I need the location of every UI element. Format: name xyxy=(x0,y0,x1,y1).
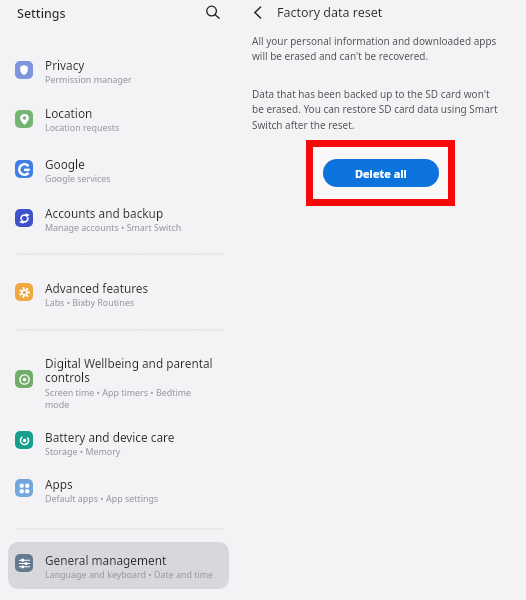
staticText: Location xyxy=(45,105,93,121)
button[interactable] xyxy=(8,465,229,512)
button[interactable] xyxy=(8,195,229,242)
button[interactable]: Back xyxy=(245,0,270,25)
staticText: Permission manager xyxy=(45,73,132,85)
button[interactable] xyxy=(8,540,229,587)
staticText: Apps xyxy=(45,476,73,492)
staticText: Settings xyxy=(17,5,66,22)
button[interactable] xyxy=(8,356,229,403)
staticText: Advanced features xyxy=(45,280,149,296)
staticText: Language and keyboard • Date and time xyxy=(45,568,214,580)
staticText: General management xyxy=(45,552,167,568)
staticText: Screen time • App timers • Bedtime mode xyxy=(45,386,215,410)
staticText: Google xyxy=(45,156,85,172)
staticText: Location requests xyxy=(45,121,120,133)
staticText: Storage • Memory xyxy=(45,445,121,457)
button[interactable]: Settings xyxy=(10,0,72,26)
button[interactable] xyxy=(8,417,229,464)
staticText: Digital Wellbeing and parental controls xyxy=(45,355,215,386)
button[interactable] xyxy=(8,146,229,193)
staticText: Google services xyxy=(45,172,111,184)
staticText: Data that has been backed up to the SD c… xyxy=(252,87,502,132)
staticText: Accounts and backup xyxy=(45,205,164,221)
button[interactable] xyxy=(8,46,229,93)
staticText: Factory data reset xyxy=(277,4,383,21)
staticText: All your personal information and downlo… xyxy=(252,34,500,63)
button[interactable]: Delete all xyxy=(323,159,439,187)
staticText: Manage accounts • Smart Switch xyxy=(45,221,182,233)
staticText: Battery and device care xyxy=(45,429,175,445)
button[interactable] xyxy=(8,269,229,316)
staticText: Default apps • App settings xyxy=(45,492,159,504)
staticText: Privacy xyxy=(45,57,85,73)
staticText: Labs • Bixby Routines xyxy=(45,296,134,308)
button[interactable] xyxy=(8,96,229,143)
button[interactable]: Search xyxy=(200,0,226,26)
staticText: Delete all xyxy=(355,166,407,181)
